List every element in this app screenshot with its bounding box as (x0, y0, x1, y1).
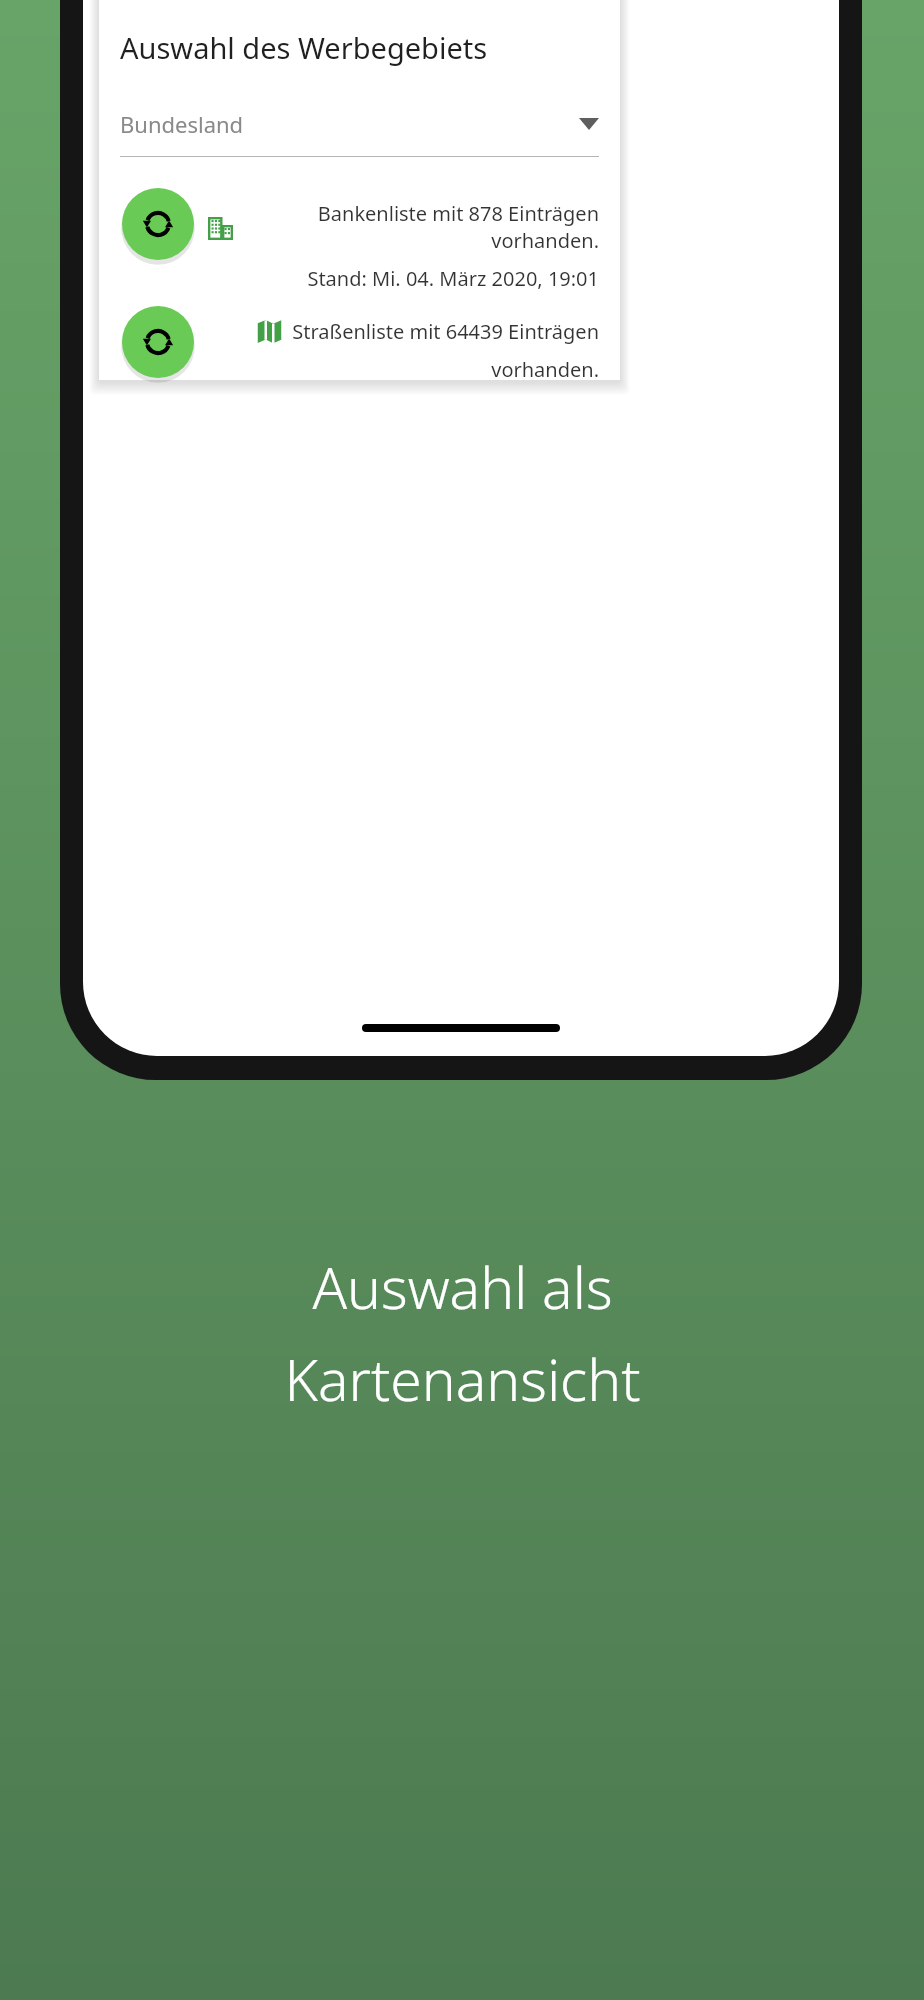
staticText: Bundesland (120, 109, 579, 139)
staticText: Kartenansicht (284, 1340, 641, 1418)
button[interactable]: Aktualisieren (122, 306, 194, 378)
button[interactable]: Bundesland (120, 109, 599, 139)
staticText: Straßenliste mit 64439 Einträgen (292, 318, 599, 345)
staticText: Stand: Mi. 04. März 2020, 19:01 (307, 265, 599, 292)
button[interactable]: Aktualisieren (122, 188, 194, 260)
staticText: Bankenliste mit 878 Einträgen vorhanden. (243, 200, 599, 254)
staticText: Auswahl des Werbegebiets (120, 28, 488, 67)
staticText: Auswahl als (312, 1248, 613, 1326)
staticText: vorhanden. (491, 356, 599, 380)
